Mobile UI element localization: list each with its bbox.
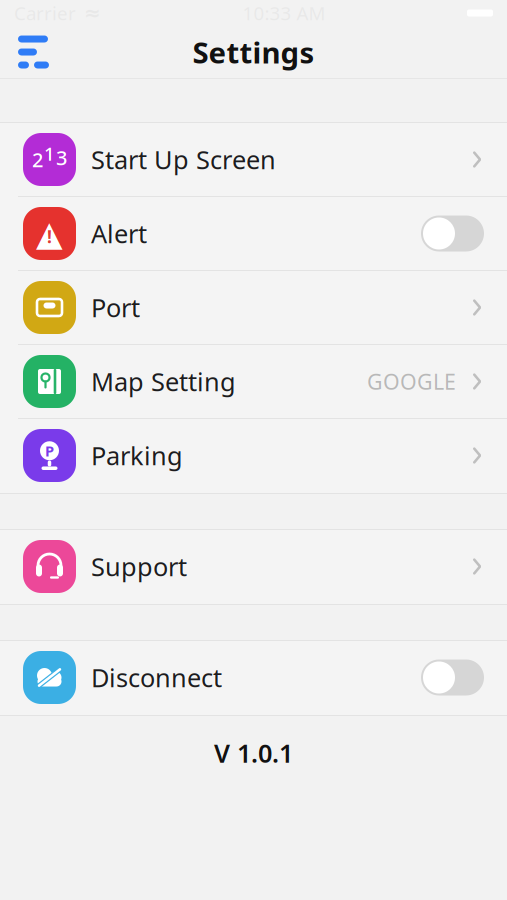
staticText: Disconnect: [91, 661, 222, 694]
button[interactable]: Menu: [0, 25, 72, 78]
staticText: 3: [56, 144, 67, 171]
staticText: ▲: [36, 214, 63, 253]
button[interactable]: Support: [0, 530, 507, 604]
button[interactable]: P: [0, 419, 507, 493]
staticText: !: [47, 225, 52, 248]
staticText: Port: [91, 291, 140, 324]
staticText: ≈: [84, 2, 101, 24]
staticText: 1: [44, 141, 55, 166]
staticText: Settings: [192, 32, 314, 71]
button[interactable]: 2: [0, 123, 507, 197]
staticText: Alert: [91, 217, 147, 250]
staticText: Start Up Screen: [91, 143, 276, 176]
staticText: Support: [91, 550, 187, 583]
staticText: GOOGLE: [367, 367, 456, 396]
button[interactable]: ▲: [0, 197, 507, 271]
staticText: 2: [32, 146, 43, 173]
staticText: V 1.0.1: [214, 736, 293, 770]
button[interactable]: Map Setting: [0, 345, 507, 419]
button[interactable]: Disconnect: [0, 641, 507, 715]
staticText: P: [45, 441, 54, 460]
button[interactable]: Port: [0, 271, 507, 345]
staticText: Parking: [91, 439, 183, 472]
staticText: Map Setting: [91, 365, 236, 398]
